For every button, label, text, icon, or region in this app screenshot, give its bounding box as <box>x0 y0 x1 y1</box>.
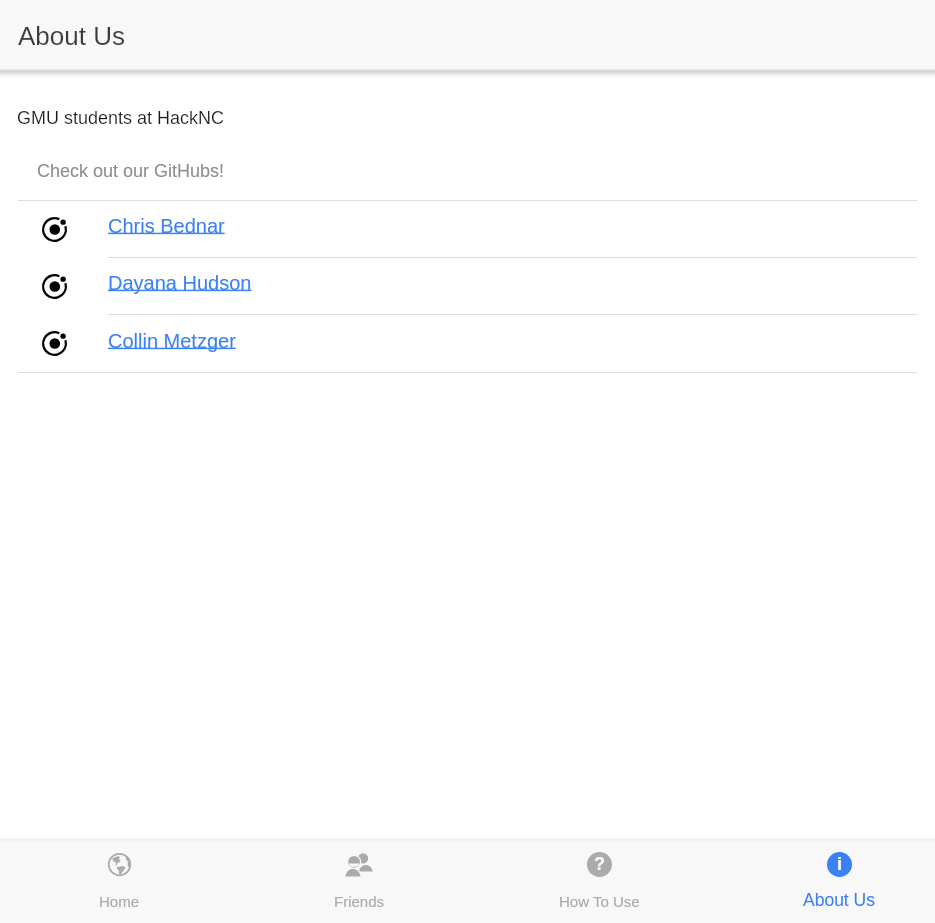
staticText: About Us <box>803 890 875 910</box>
button[interactable]: About Us <box>719 840 935 922</box>
staticText: GMU students at HackNC <box>17 108 225 128</box>
other: How To Use <box>587 852 612 877</box>
staticText: About Us <box>18 21 125 50</box>
other: About Us <box>827 852 852 877</box>
other: Friends <box>345 852 373 877</box>
button[interactable]: Chris Bednar <box>0 201 935 257</box>
staticText: Check out our GitHubs! <box>37 161 225 181</box>
button[interactable]: Dayana Hudson <box>0 258 935 314</box>
button[interactable]: How To Use <box>479 840 719 922</box>
staticText: How To Use <box>559 893 640 910</box>
staticText: ? <box>594 854 605 874</box>
button[interactable]: Home <box>0 840 239 922</box>
other: Home <box>107 852 132 877</box>
staticText: Friends <box>334 893 385 910</box>
staticText: Collin Metzger <box>108 330 236 352</box>
staticText: Home <box>99 893 140 910</box>
staticText: Dayana Hudson <box>108 272 252 294</box>
button[interactable]: Collin Metzger <box>0 315 935 372</box>
staticText: Chris Bednar <box>108 215 225 237</box>
staticText: i <box>837 854 843 874</box>
button[interactable]: Friends <box>239 840 479 922</box>
